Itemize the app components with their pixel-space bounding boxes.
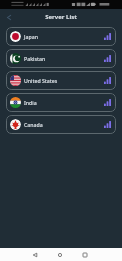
staticText: Japan <box>24 33 38 40</box>
button[interactable]: Canada <box>6 115 116 134</box>
button[interactable]: Back <box>30 250 40 260</box>
button[interactable]: Recents <box>80 250 90 260</box>
staticText: India <box>24 99 37 106</box>
staticText: Canada <box>24 121 43 128</box>
button[interactable]: United States <box>6 71 116 90</box>
button[interactable]: Japan <box>6 27 116 46</box>
button[interactable]: Home <box>55 250 65 260</box>
button[interactable]: Back <box>3 11 15 23</box>
staticText: United States <box>24 77 58 84</box>
button[interactable]: India <box>6 93 116 112</box>
staticText: Pakistan <box>24 55 46 62</box>
button[interactable]: Pakistan <box>6 49 116 68</box>
staticText: Server List <box>45 13 77 21</box>
